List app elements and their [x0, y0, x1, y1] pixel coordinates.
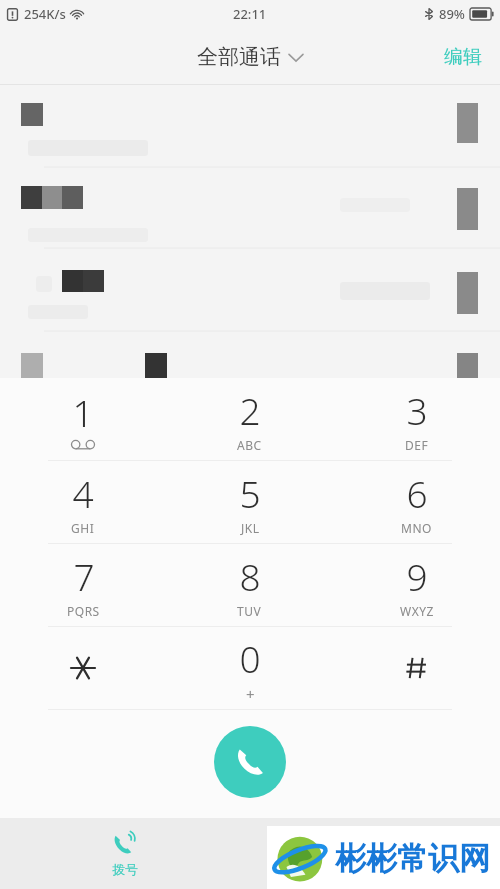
button[interactable]: Call	[214, 726, 286, 798]
button[interactable]: 7	[0, 544, 166, 626]
staticText: ABC	[237, 437, 262, 453]
staticText: 彬彬常识网	[335, 839, 490, 878]
button[interactable]	[333, 627, 500, 709]
staticText: MNO	[401, 520, 432, 536]
staticText: PQRS	[67, 603, 100, 619]
button[interactable]: 3	[333, 378, 500, 460]
button[interactable]: 9	[333, 544, 500, 626]
button[interactable]: 2	[166, 378, 333, 460]
staticText: 22:11	[233, 5, 267, 23]
button[interactable]: 6	[333, 461, 500, 543]
staticText: JKL	[241, 520, 260, 536]
staticText: 编辑	[444, 45, 482, 69]
button[interactable]: 拨号	[0, 818, 250, 889]
button[interactable]: 全部通话	[187, 38, 313, 76]
button[interactable]	[0, 627, 166, 709]
staticText: 全部通话	[197, 44, 281, 70]
staticText: DEF	[405, 437, 429, 453]
staticText: 89%	[439, 5, 465, 23]
staticText: 4	[72, 468, 94, 518]
staticText: +	[246, 684, 255, 704]
button[interactable]: 5	[166, 461, 333, 543]
button[interactable]: 8	[166, 544, 333, 626]
staticText: TUV	[237, 603, 262, 619]
staticText: 6	[406, 468, 428, 518]
button[interactable]: 编辑	[426, 35, 500, 79]
button[interactable]: 0	[166, 627, 333, 709]
staticText: 3	[406, 385, 428, 435]
staticText: GHI	[71, 520, 95, 536]
staticText: 7	[73, 551, 95, 601]
staticText: 拨号	[112, 861, 138, 877]
staticText: 1	[72, 387, 94, 437]
staticText: 5	[239, 468, 261, 518]
staticText: 0	[239, 633, 261, 683]
staticText: 8	[239, 551, 261, 601]
staticText: WXYZ	[400, 603, 434, 619]
button[interactable]: Contacts	[250, 818, 500, 889]
staticText: 9	[406, 551, 428, 601]
staticText: 254K/s	[24, 5, 66, 23]
staticText: 2	[239, 385, 261, 435]
button[interactable]: 1	[0, 378, 166, 460]
button[interactable]: 4	[0, 461, 166, 543]
